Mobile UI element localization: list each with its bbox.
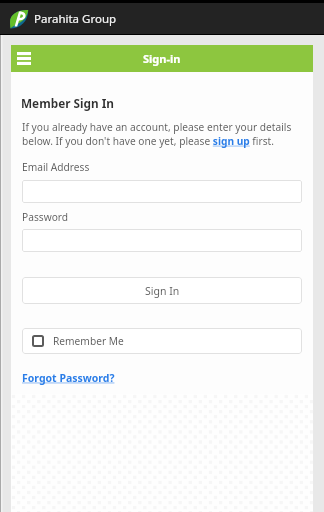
staticText: Forgot Password? [22,371,115,385]
staticText: Email Address [22,160,90,174]
button[interactable]: Forgot Password? [22,371,115,385]
staticText: Sign In [145,284,180,298]
staticText: Remember Me [53,334,124,348]
button[interactable]: Remember Me [22,328,302,354]
button[interactable] [22,180,302,203]
button[interactable]: Menu [13,48,34,69]
staticText: Member Sign In [21,95,114,111]
staticText: Password [22,210,69,224]
staticText: Sign-in [143,51,181,66]
button[interactable]: Sign In [22,277,302,304]
button[interactable]: Sign-in [11,45,313,72]
staticText: Parahita Group [34,11,117,27]
staticText: If you already have an account, please e… [22,120,302,148]
button[interactable] [22,229,302,252]
